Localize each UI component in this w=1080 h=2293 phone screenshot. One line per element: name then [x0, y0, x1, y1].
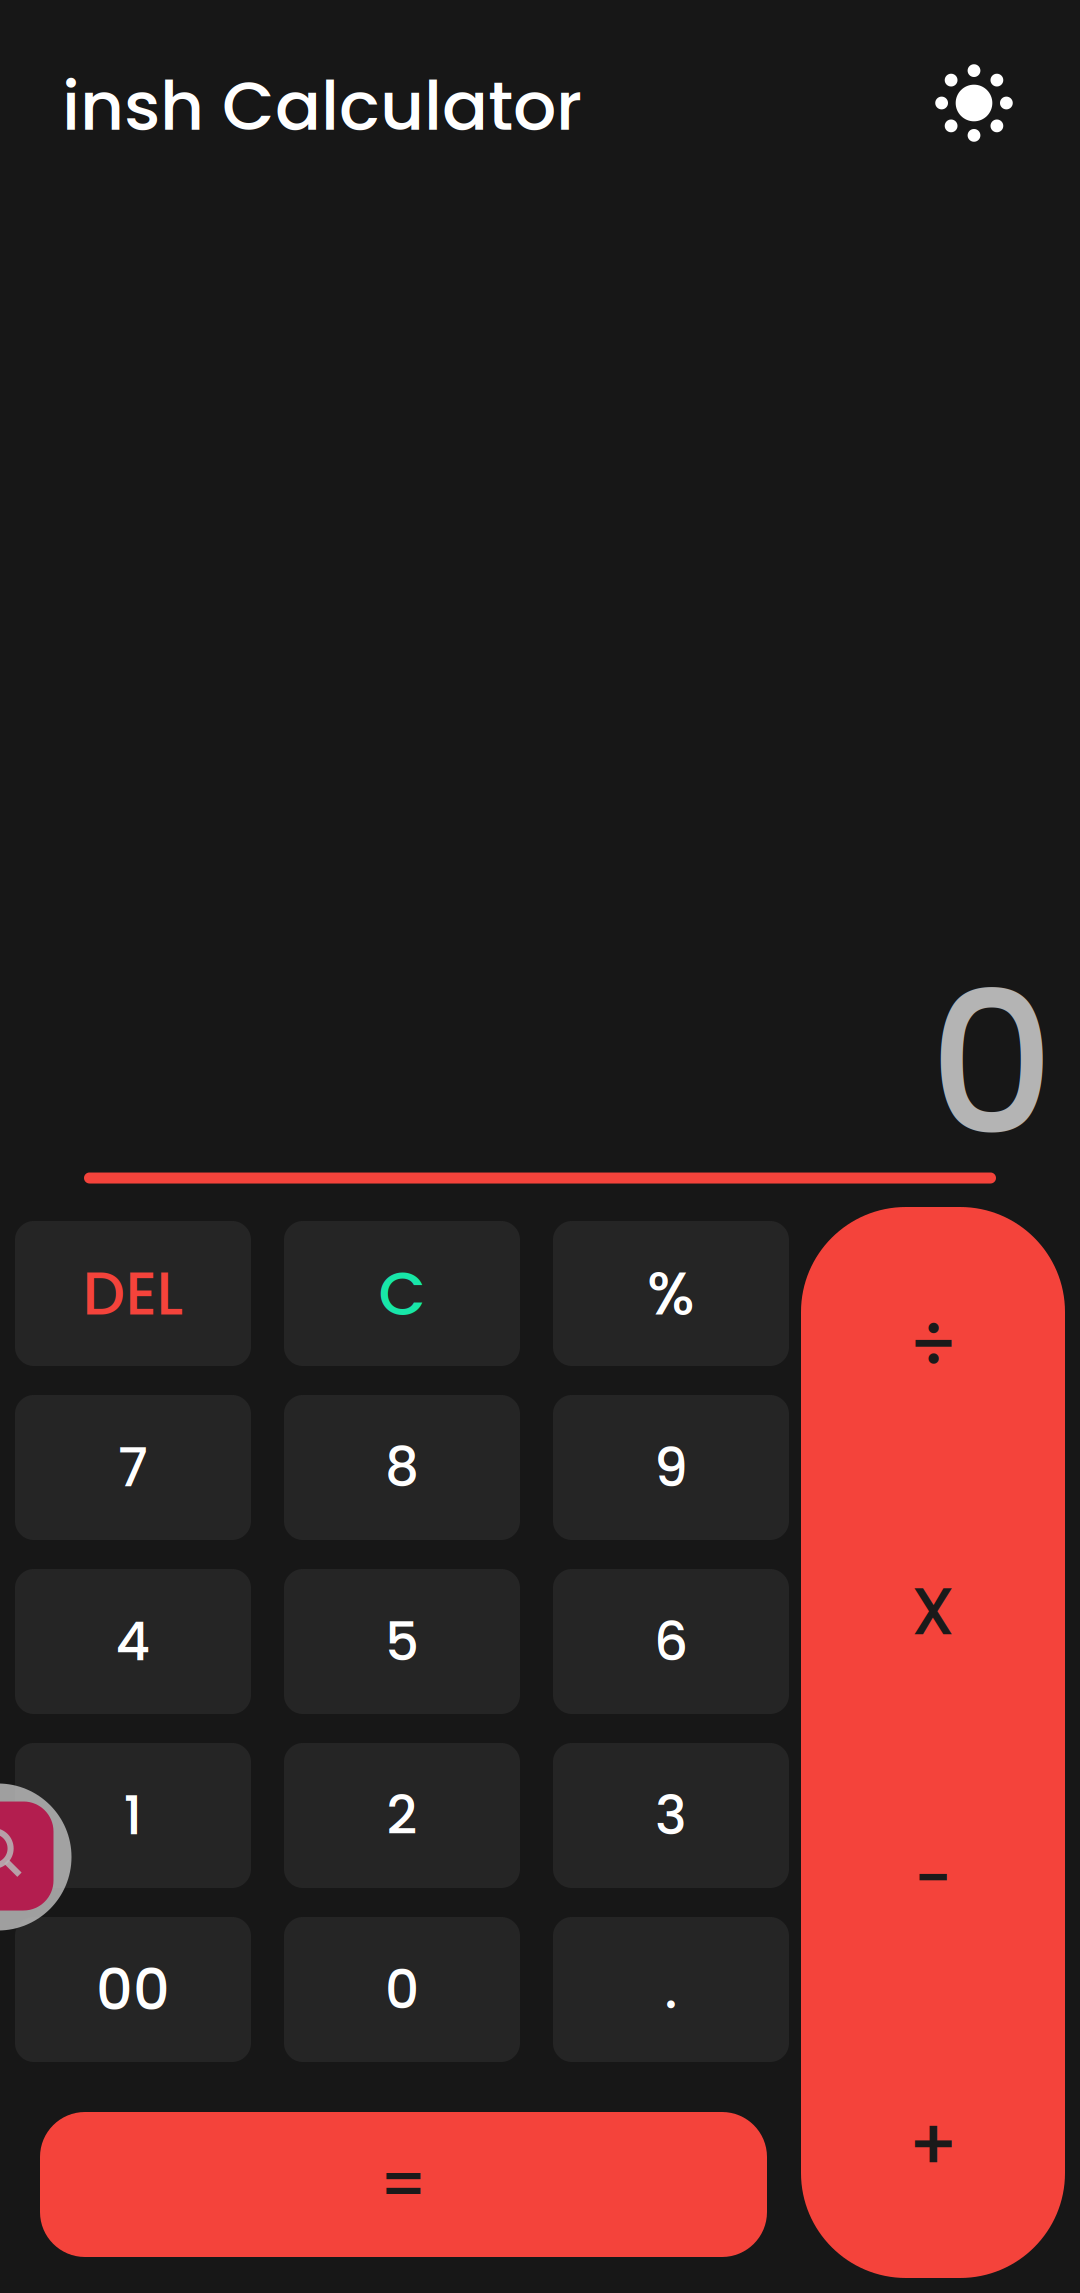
- staticText: C: [378, 1251, 425, 1336]
- staticText: 1: [123, 1778, 142, 1853]
- button[interactable]: 3: [553, 1743, 789, 1888]
- button[interactable]: −: [801, 1744, 1065, 2012]
- staticText: 8: [385, 1430, 419, 1505]
- staticText: 4: [115, 1604, 150, 1679]
- button[interactable]: 4: [15, 1569, 251, 1714]
- staticText: 9: [654, 1430, 688, 1505]
- button[interactable]: 5: [284, 1569, 520, 1714]
- staticText: 0: [385, 1952, 419, 2027]
- button[interactable]: .: [553, 1917, 789, 2062]
- staticText: X: [911, 1564, 955, 1658]
- staticText: 7: [118, 1430, 148, 1505]
- staticText: 2: [386, 1778, 417, 1853]
- button[interactable]: 1: [15, 1743, 251, 1888]
- staticText: 0: [929, 927, 1055, 1201]
- button[interactable]: %: [553, 1221, 789, 1366]
- button[interactable]: 00: [15, 1917, 251, 2062]
- staticText: 6: [654, 1604, 688, 1679]
- button[interactable]: X: [801, 1477, 1065, 1745]
- button[interactable]: =: [40, 2112, 767, 2257]
- button[interactable]: 0: [284, 1917, 520, 2062]
- staticText: .: [664, 1952, 677, 2027]
- button[interactable]: 9: [553, 1395, 789, 1540]
- staticText: DEL: [82, 1251, 183, 1335]
- button[interactable]: +: [801, 2011, 1065, 2279]
- staticText: %: [647, 1251, 695, 1335]
- button[interactable]: insh Calculator: [62, 41, 822, 171]
- button[interactable]: Search: [0, 1801, 53, 1910]
- button[interactable]: DEL: [15, 1221, 251, 1366]
- staticText: =: [378, 2140, 428, 2229]
- button[interactable]: 7: [15, 1395, 251, 1540]
- staticText: 5: [385, 1604, 419, 1679]
- button[interactable]: C: [284, 1221, 520, 1366]
- staticText: +: [907, 2095, 958, 2195]
- staticText: ÷: [909, 1294, 957, 1393]
- button[interactable]: 2: [284, 1743, 520, 1888]
- button[interactable]: ÷: [801, 1210, 1065, 1478]
- staticText: 3: [655, 1778, 687, 1853]
- staticText: insh Calculator: [62, 58, 582, 154]
- staticText: 00: [96, 1949, 170, 2030]
- button[interactable]: 6: [553, 1569, 789, 1714]
- button[interactable]: Brightness: [915, 44, 1033, 162]
- button[interactable]: 8: [284, 1395, 520, 1540]
- staticText: −: [913, 1831, 952, 1925]
